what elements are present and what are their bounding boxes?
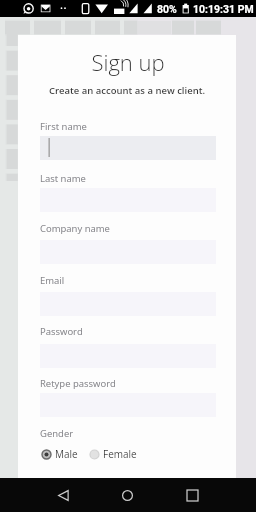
staticText: Email	[40, 274, 65, 287]
staticText: Gender	[40, 427, 74, 440]
staticText: First name	[40, 120, 87, 133]
button[interactable]	[40, 136, 216, 160]
staticText: Sign up	[19, 47, 237, 77]
button[interactable]: Home	[111, 479, 144, 512]
staticText: Male	[55, 447, 78, 461]
staticText: Female	[103, 447, 137, 461]
staticText: Retype password	[40, 377, 116, 390]
staticText: 80%	[157, 3, 177, 15]
staticText: Company name	[40, 222, 110, 235]
staticText: Create an account as a new client.	[18, 84, 236, 97]
button[interactable]: Recents	[176, 479, 209, 512]
staticText: Last name	[40, 172, 86, 185]
staticText: 10:19:31 PM	[193, 3, 254, 15]
staticText: Password	[40, 325, 83, 338]
button[interactable]: Male	[41, 447, 78, 461]
button[interactable]: Back	[47, 479, 80, 512]
button[interactable]: Female	[89, 447, 137, 461]
